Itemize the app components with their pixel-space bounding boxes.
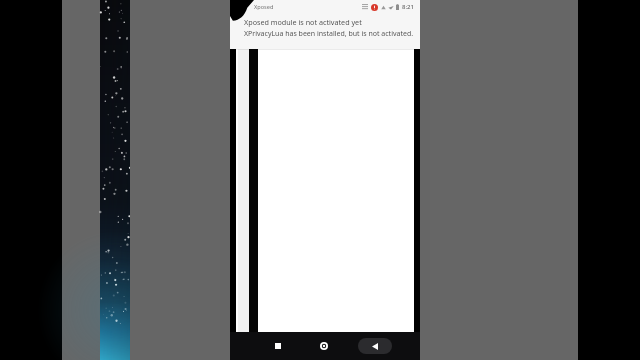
button[interactable]: Xposed module is not activated yet xyxy=(230,16,420,39)
button[interactable]: Recent apps xyxy=(266,334,290,358)
staticText: Xposed xyxy=(254,3,274,11)
staticText: XPrivacyLua has been installed, but is n… xyxy=(244,29,414,39)
staticText: 8:21 xyxy=(402,3,414,11)
button[interactable]: Home xyxy=(312,334,336,358)
staticText: Xposed module is not activated yet xyxy=(244,17,362,27)
button[interactable]: Back xyxy=(358,338,392,354)
